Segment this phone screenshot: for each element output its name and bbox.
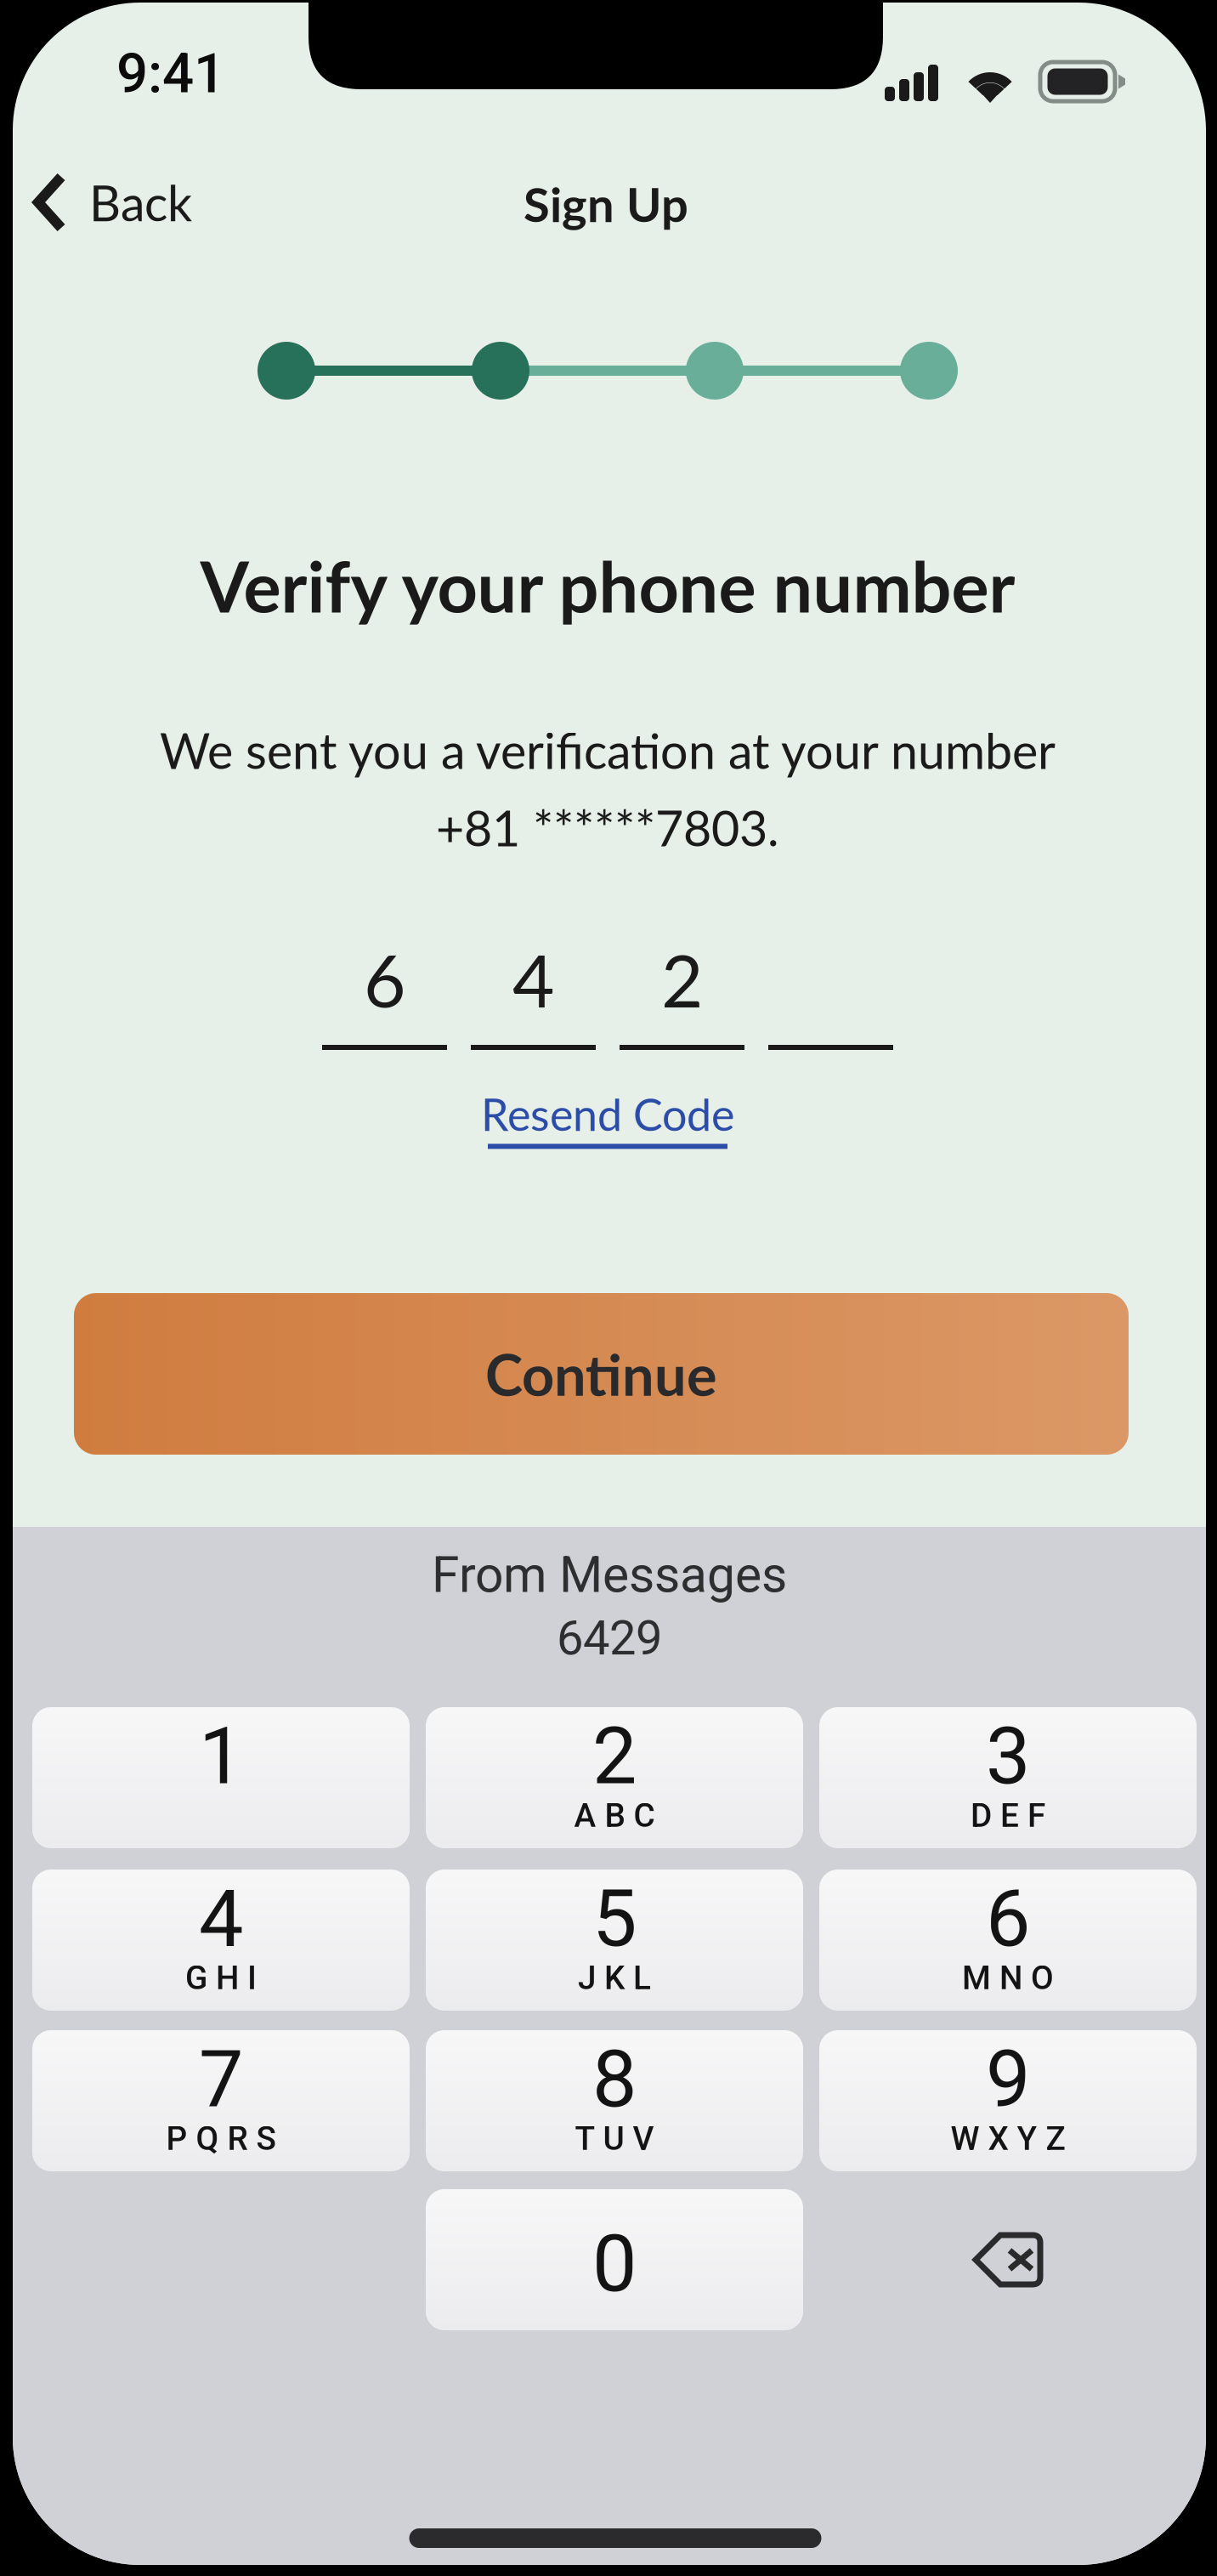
- staticText: Continue: [485, 1340, 717, 1408]
- staticText: M N O: [962, 1959, 1054, 1997]
- staticText: 3: [986, 1710, 1030, 1803]
- button[interactable]: 0: [426, 2189, 803, 2330]
- staticText: 4: [512, 936, 554, 1023]
- staticText: A B C: [574, 1796, 655, 1835]
- button[interactable]: 1: [32, 1707, 410, 1848]
- button[interactable]: 4: [32, 1870, 410, 2011]
- button[interactable]: 3: [819, 1707, 1197, 1848]
- staticText: Sign Up: [524, 175, 688, 232]
- staticText: 2: [592, 1710, 637, 1803]
- staticText: 6: [364, 936, 405, 1023]
- button[interactable]: 5: [426, 1870, 803, 2011]
- staticText: 9: [986, 2033, 1030, 2126]
- button[interactable]: Delete: [819, 2189, 1197, 2330]
- staticText: +81 ******7803.: [436, 798, 779, 857]
- button[interactable]: 2: [426, 1707, 803, 1848]
- staticText: P Q R S: [166, 2119, 276, 2158]
- staticText: 1: [199, 1710, 243, 1803]
- staticText: J K L: [578, 1959, 651, 1997]
- button[interactable]: Resend Code: [462, 1081, 753, 1156]
- button[interactable]: 9: [819, 2030, 1197, 2171]
- staticText: We sent you a verification at your numbe…: [160, 721, 1056, 779]
- staticText: W X Y Z: [951, 2119, 1065, 2158]
- staticText: 7: [199, 2033, 243, 2126]
- button[interactable]: 7: [32, 2030, 410, 2171]
- button[interactable]: 8: [426, 2030, 803, 2171]
- staticText: D E F: [971, 1796, 1045, 1835]
- button[interactable]: 6: [819, 1870, 1197, 2011]
- staticText: 6: [986, 1872, 1030, 1965]
- staticText: 2: [661, 936, 703, 1023]
- staticText: 6429: [557, 1610, 662, 1666]
- button[interactable]: Continue: [74, 1293, 1129, 1455]
- button[interactable]: Back: [15, 159, 207, 246]
- staticText: Verify your phone number: [200, 543, 1015, 628]
- staticText: T U V: [575, 2119, 654, 2158]
- staticText: Resend Code: [481, 1087, 734, 1140]
- staticText: 9:41: [116, 41, 225, 106]
- staticText: 5: [592, 1872, 637, 1965]
- staticText: Back: [89, 173, 192, 232]
- staticText: 8: [592, 2033, 637, 2126]
- staticText: 4: [199, 1872, 243, 1965]
- staticText: G H I: [185, 1959, 257, 1997]
- staticText: 0: [592, 2217, 637, 2310]
- staticText: From Messages: [432, 1546, 787, 1604]
